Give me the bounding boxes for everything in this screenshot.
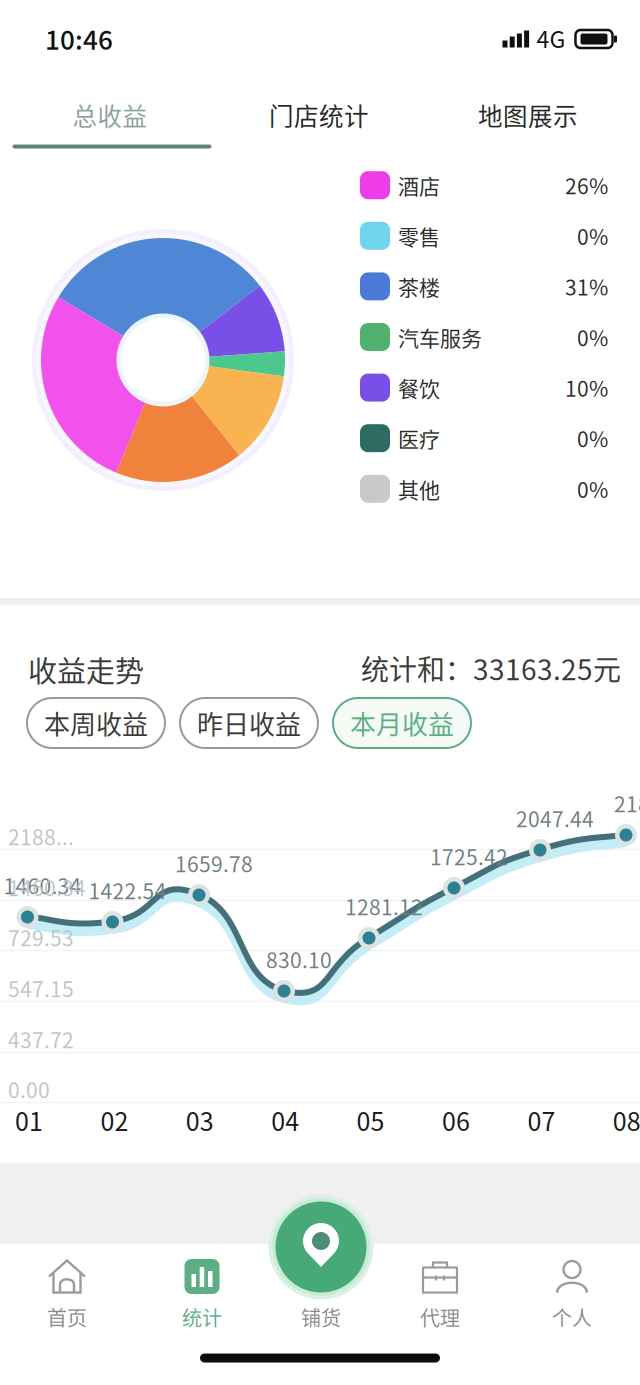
staticText: 收益走势 <box>28 648 144 690</box>
staticText: 酒店 <box>398 170 440 200</box>
staticText: 1422.54 <box>88 875 166 905</box>
button[interactable]: 个人 <box>512 1254 632 1336</box>
staticText: 31% <box>565 271 608 302</box>
staticText: 其他 <box>398 474 440 504</box>
staticText: 铺货 <box>301 1302 341 1331</box>
staticText: 统计和：33163.25元 <box>361 648 621 688</box>
staticText: 本月收益 <box>350 704 454 742</box>
staticText: 门店统计 <box>269 97 369 133</box>
button[interactable]: 门店统计 <box>212 85 425 145</box>
staticText: 统计 <box>182 1302 222 1331</box>
staticText: 2188. <box>614 788 640 818</box>
staticText: 0% <box>577 322 608 352</box>
staticText: 本周收益 <box>44 704 148 742</box>
staticText: 餐饮 <box>398 372 440 403</box>
staticText: 10:46 <box>45 20 113 57</box>
staticText: 2047.44 <box>516 803 594 833</box>
staticText: 06 <box>442 1102 470 1138</box>
staticText: 0.00 <box>8 1074 50 1104</box>
staticText: 昨日收益 <box>197 704 301 742</box>
staticText: 个人 <box>552 1302 592 1331</box>
staticText: 05 <box>357 1102 385 1138</box>
staticText: 2188... <box>8 821 74 851</box>
staticText: 03 <box>186 1102 214 1138</box>
staticText: 0% <box>577 221 608 251</box>
staticText: 汽车服务 <box>398 322 482 352</box>
button[interactable]: 本周收益 <box>27 698 165 748</box>
staticText: 1725.42 <box>430 841 508 871</box>
staticText: 代理 <box>420 1302 460 1331</box>
staticText: 830.10 <box>266 944 332 974</box>
staticText: 02 <box>100 1102 128 1138</box>
button[interactable]: 昨日收益 <box>180 698 318 748</box>
staticText: 10% <box>565 372 608 403</box>
staticText: 4G <box>536 21 565 55</box>
staticText: 1460.34 <box>3 870 81 900</box>
button[interactable]: 总收益 <box>3 85 216 145</box>
button[interactable]: 本月收益 <box>333 698 471 748</box>
staticText: 01 <box>15 1102 43 1138</box>
staticText: 729.53 <box>8 922 74 952</box>
button[interactable]: 代理 <box>380 1254 500 1336</box>
staticText: 1281.12 <box>345 891 423 921</box>
staticText: 茶楼 <box>398 271 440 302</box>
button[interactable]: 地图展示 <box>421 85 635 145</box>
staticText: 1460.34 <box>8 872 86 902</box>
staticText: 总收益 <box>72 97 147 133</box>
staticText: 07 <box>527 1102 555 1138</box>
staticText: 08 <box>613 1102 640 1138</box>
button[interactable]: 首页 <box>7 1254 127 1336</box>
staticText: 437.72 <box>8 1024 74 1054</box>
staticText: 04 <box>271 1102 299 1138</box>
button[interactable]: 统计 <box>142 1254 262 1336</box>
button[interactable]: 铺货 <box>261 1254 381 1336</box>
staticText: 零售 <box>398 221 440 251</box>
staticText: 0% <box>577 423 608 453</box>
staticText: 地图展示 <box>478 97 578 133</box>
staticText: 547.15 <box>8 973 74 1003</box>
staticText: 首页 <box>47 1302 87 1331</box>
staticText: 26% <box>565 170 608 200</box>
staticText: 1659.78 <box>175 848 253 878</box>
staticText: 医疗 <box>398 423 440 453</box>
staticText: 0% <box>577 474 608 504</box>
button[interactable]: 铺货 <box>268 1194 373 1299</box>
